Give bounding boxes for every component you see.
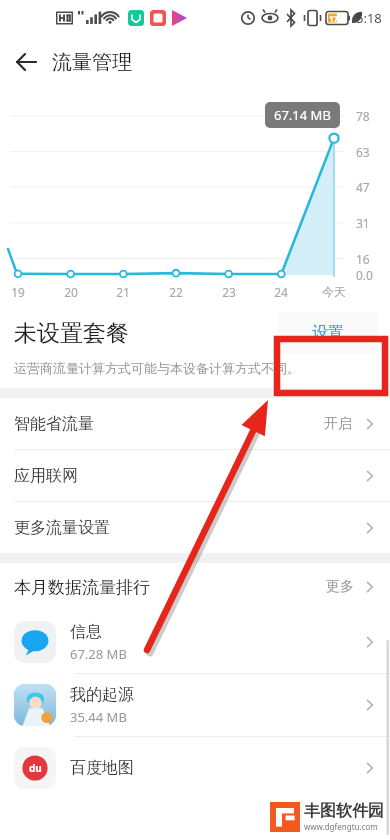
button[interactable]: 信息 (0, 611, 390, 673)
staticText: 智能省流量 (14, 414, 324, 434)
staticText: 35.44 MB (70, 708, 127, 726)
staticText: 19 (11, 284, 25, 300)
staticText: 今天 (322, 284, 346, 299)
staticText: 应用联网 (14, 466, 360, 486)
staticText: 22 (169, 284, 183, 300)
staticText: 23 (222, 284, 236, 300)
staticText: 16 (356, 251, 370, 267)
staticText: 47 (356, 179, 370, 195)
staticText: du (29, 761, 42, 775)
button[interactable]: 智能省流量 (0, 398, 390, 449)
button[interactable]: 应用联网 (0, 450, 390, 501)
staticText: 信息 (70, 622, 102, 642)
staticText: 设置 (312, 323, 344, 343)
staticText: 开启 (324, 415, 352, 433)
staticText: 5:18 (356, 9, 382, 27)
staticText: 24 (274, 284, 288, 300)
staticText: www.dgfengtu.com (304, 821, 378, 832)
staticText: 运营商流量计算方式可能与本设备计算方式不同。 (14, 360, 300, 376)
staticText: 67.28 MB (70, 645, 127, 663)
button[interactable]: 更多流量设置 (0, 502, 390, 553)
staticText: 17 (329, 13, 339, 24)
staticText: 67.14 MB (274, 106, 331, 124)
staticText: 本月数据流量排行 (14, 577, 326, 598)
staticText: 更多流量设置 (14, 518, 360, 538)
staticText: 21 (116, 284, 130, 300)
button[interactable]: 我的起源 (0, 674, 390, 736)
staticText: 63 (356, 144, 370, 160)
staticText: 20 (64, 284, 78, 300)
staticText: 更多 (326, 578, 354, 596)
staticText: 流量管理 (52, 50, 132, 75)
staticText: 未设置套餐 (14, 319, 278, 348)
staticText: 我的起源 (70, 685, 134, 705)
button[interactable]: Back (0, 36, 52, 88)
button[interactable]: 设置 (278, 312, 378, 354)
staticText: 0.0 (356, 267, 373, 283)
button[interactable]: du (0, 737, 390, 799)
button[interactable]: 本月数据流量排行 (0, 563, 390, 611)
staticText: 丰图软件园 (304, 801, 384, 821)
staticText: 百度地图 (70, 758, 134, 778)
staticText: 31 (356, 215, 370, 231)
staticText: 78 (356, 108, 370, 124)
